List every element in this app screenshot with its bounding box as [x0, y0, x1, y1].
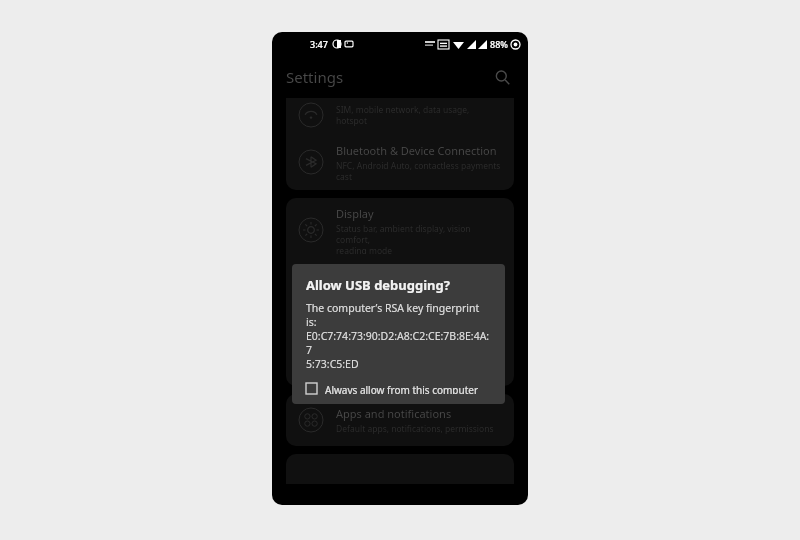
button[interactable]: Always allow from this computer	[306, 381, 479, 396]
staticText: Status bar, ambient display, vision comf…	[336, 223, 502, 254]
button[interactable]: Search	[490, 65, 514, 89]
staticText: Bluetooth & Device Connection	[336, 143, 497, 158]
staticText: Default apps, notifications, permissions	[336, 423, 494, 435]
staticText: SIM, mobile network, data usage, hotspot	[336, 104, 502, 126]
staticText: 3:47	[310, 38, 328, 50]
staticText: Apps and notifications	[336, 406, 452, 421]
staticText: The computer’s RSA key fingerprint is: E…	[306, 301, 491, 371]
button[interactable]: Apps and notifications	[286, 394, 514, 442]
staticText: Display	[336, 206, 374, 221]
button[interactable]: Display	[286, 198, 514, 254]
staticText: Always allow from this computer	[325, 383, 479, 394]
staticText: Allow USB debugging?	[306, 276, 450, 294]
staticText: NFC, Android Auto, contactless payments …	[336, 160, 501, 182]
button[interactable]: SIM, mobile network, data usage, hotspot	[286, 98, 514, 132]
button[interactable]: Bluetooth & Device Connection	[286, 132, 514, 188]
staticText: Settings	[286, 67, 344, 87]
staticText: 88%	[490, 38, 508, 50]
